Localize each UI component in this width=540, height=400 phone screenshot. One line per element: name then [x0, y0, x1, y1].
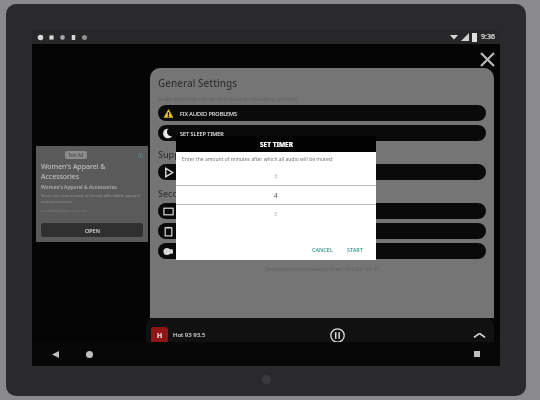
button[interactable]: OPEN [41, 223, 143, 237]
staticText: Women's Apparel & Accessories [41, 162, 143, 182]
staticText: ⓘ [138, 152, 143, 158]
staticText: OPEN [85, 227, 100, 234]
staticText: General Settings [158, 76, 237, 90]
staticText: 4 [274, 191, 278, 200]
staticText: 3 [274, 172, 278, 180]
staticText: Women's Apparel & Accessories [41, 184, 117, 191]
button[interactable]: Close [474, 46, 500, 72]
staticText: Test Ad [68, 152, 84, 158]
staticText: Developed and maintained by Vivem - v7.0… [158, 266, 486, 272]
staticText: 9:36 [481, 32, 495, 42]
button[interactable]: PERSONALIZED ADS [158, 203, 486, 219]
button[interactable]: START [342, 244, 368, 255]
button[interactable]: Recents [468, 345, 486, 363]
button[interactable]: CANCEL [307, 244, 338, 255]
button[interactable]: SET SLEEP TIMER [158, 125, 486, 141]
staticText: CANCEL [312, 246, 333, 253]
button[interactable]: PRIVACY POLICY [158, 223, 486, 239]
staticText: Secondary [158, 187, 203, 199]
button[interactable]: Pause [326, 324, 348, 346]
staticText: 5 [274, 210, 278, 218]
staticText: H [157, 331, 163, 341]
button[interactable]: H [146, 318, 494, 352]
staticText: SET TIMER [260, 140, 293, 149]
button[interactable]: Expand [469, 325, 489, 345]
button[interactable]: FIX AUDIO PROBLEMS [158, 105, 486, 121]
staticText: Shop our new arrivals of trendy affordab… [41, 193, 143, 205]
other: Home [262, 375, 271, 384]
staticText: START [347, 246, 363, 253]
button[interactable]: READ OUR TERMS AND SERVICES [158, 243, 486, 259]
button[interactable]: RATE US ON PLAY STORE [158, 164, 486, 180]
staticText: modaholicstore.now.site [41, 208, 87, 213]
staticText: Audio playback can be improved by changi… [158, 95, 299, 102]
staticText: Enter the amount of minutes after which … [182, 156, 334, 163]
button[interactable]: Back [46, 345, 64, 363]
staticText: Hot 93 93.5 [173, 331, 206, 339]
staticText: Support [158, 148, 193, 160]
staticText: FIX AUDIO PROBLEMS [180, 110, 238, 117]
button[interactable]: 4 [176, 186, 376, 204]
button[interactable]: Home [80, 345, 98, 363]
staticText: SET SLEEP TIMER [180, 130, 224, 137]
